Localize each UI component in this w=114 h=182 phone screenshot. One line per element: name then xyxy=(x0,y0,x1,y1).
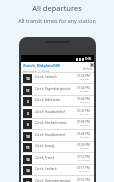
button[interactable]: 14 xyxy=(21,164,94,176)
staticText: in 7 min xyxy=(80,112,90,115)
staticText: 11 xyxy=(26,89,30,93)
staticText: 07:52 PM xyxy=(77,178,90,182)
staticText: Bahnhofstr. 1 · Zürich xyxy=(23,70,50,73)
staticText: in 5 min xyxy=(80,77,90,80)
button[interactable]: 11 xyxy=(21,84,94,96)
staticText: 11 xyxy=(26,146,30,150)
staticText: All transit times for any station xyxy=(18,17,96,24)
staticText: 07:49 PM xyxy=(77,143,90,147)
staticText: Refresh xyxy=(83,67,93,71)
staticText: 8:05 xyxy=(85,57,92,61)
staticText: 07:46 PM xyxy=(77,86,90,90)
staticText: in 11 min xyxy=(79,169,90,172)
staticText: Zürich, Bhfplatz/HB xyxy=(23,63,60,68)
staticText: Zürich, Regensbergbrücke xyxy=(35,87,77,91)
staticText: in 9 min xyxy=(80,146,90,149)
staticText: 14 xyxy=(26,158,30,162)
button[interactable]: 6 xyxy=(21,118,94,130)
staticText: 3 xyxy=(27,100,29,104)
staticText: 07:48 PM xyxy=(77,132,90,136)
staticText: 07:45 PM xyxy=(77,74,90,78)
staticText: 3 xyxy=(27,112,29,116)
staticText: 11 xyxy=(26,181,30,182)
staticText: in 8 min xyxy=(80,123,90,126)
staticText: 6 xyxy=(27,123,29,127)
staticText: in 6 min xyxy=(80,89,90,92)
staticText: Zürich, Seebach xyxy=(35,75,77,79)
staticText: in 8 min xyxy=(80,135,90,138)
button[interactable]: Settings xyxy=(89,62,94,67)
staticText: 14 xyxy=(26,77,30,81)
staticText: Zürich, Hauptbahnhof xyxy=(35,110,77,114)
staticText: in 10 min xyxy=(79,158,90,161)
staticText: Zürich, Albisrieden xyxy=(35,98,77,102)
staticText: Zürich, Regensbergbrücke xyxy=(35,179,77,182)
button[interactable]: 11 xyxy=(21,141,94,153)
staticText: 07:48 PM xyxy=(77,120,90,124)
staticText: 07:47 PM xyxy=(77,109,90,113)
button[interactable]: 3 xyxy=(21,95,94,107)
button[interactable]: 3 xyxy=(21,107,94,119)
staticText: 10 xyxy=(26,135,30,139)
staticText: in 6 min xyxy=(80,100,90,103)
button[interactable]: 10 xyxy=(21,130,94,142)
staticText: Zürich, Auzelg xyxy=(35,144,77,148)
staticText: Zürich, Hauptbahnhof xyxy=(35,133,77,137)
staticText: 07:46 PM xyxy=(77,97,90,101)
button[interactable]: 14 xyxy=(21,153,94,165)
button[interactable]: 11 xyxy=(21,176,94,182)
staticText: All departures xyxy=(32,3,82,13)
staticText: 07:51 PM xyxy=(77,166,90,170)
button[interactable]: 14 xyxy=(21,72,94,84)
staticText: 14 xyxy=(26,169,30,173)
staticText: Zürich, Seebach xyxy=(35,167,77,171)
staticText: 07:50 PM xyxy=(77,155,90,159)
staticText: Zürich, Klosbachstrasse xyxy=(35,121,77,125)
staticText: Zürich, Triemli xyxy=(35,156,77,160)
